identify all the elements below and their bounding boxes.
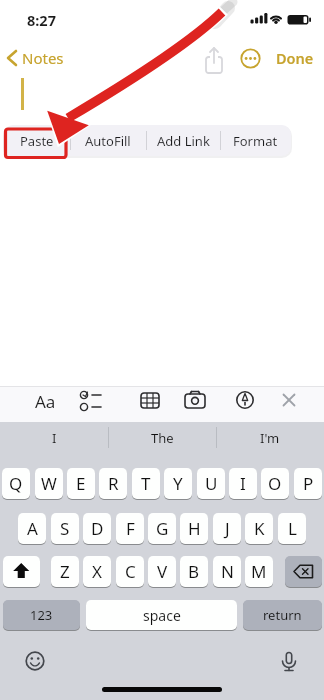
staticText: The (151, 429, 174, 447)
staticText: B (188, 560, 200, 583)
button[interactable]: S (51, 513, 79, 544)
button[interactable]: N (213, 556, 241, 587)
button[interactable]: AutoFill (70, 126, 146, 155)
button[interactable]: X (83, 556, 111, 587)
button[interactable]: 123 (3, 600, 80, 630)
staticText: 8:27 (27, 10, 56, 30)
button[interactable]: L (278, 513, 306, 544)
button[interactable]: Add Link (146, 126, 220, 155)
button[interactable]: I (229, 468, 257, 499)
staticText: I (240, 472, 246, 495)
button[interactable] (285, 556, 322, 587)
staticText: S (60, 517, 70, 540)
button[interactable]: Format (220, 126, 291, 155)
staticText: return (263, 606, 302, 624)
staticText: W (41, 472, 57, 495)
staticText: P (303, 472, 314, 495)
staticText: O (268, 472, 282, 495)
staticText: I'm (260, 429, 280, 447)
button[interactable]: F (116, 513, 144, 544)
staticText: G (156, 517, 169, 540)
staticText: Format (233, 132, 278, 150)
button[interactable]: V (148, 556, 176, 587)
staticText: space (143, 606, 181, 625)
staticText: H (188, 517, 201, 540)
button[interactable]: G (148, 513, 176, 544)
button[interactable]: J (213, 513, 241, 544)
staticText: A (27, 517, 38, 540)
button[interactable]: Y (164, 468, 192, 499)
button[interactable]: Aa (31, 389, 59, 413)
button[interactable]: T (132, 468, 160, 499)
staticText: D (91, 517, 104, 540)
button[interactable]: O (261, 468, 289, 499)
button[interactable] (3, 556, 40, 587)
button[interactable]: B (180, 556, 208, 587)
button[interactable]: Paste (4, 126, 70, 155)
button[interactable]: P (294, 468, 322, 499)
button[interactable]: R (99, 468, 127, 499)
button[interactable]: D (83, 513, 111, 544)
button[interactable]: M (245, 556, 273, 587)
staticText: C (125, 560, 136, 583)
staticText: T (141, 472, 151, 495)
button[interactable]: Q (2, 468, 30, 499)
button[interactable]: The (108, 424, 216, 451)
staticText: X (92, 560, 102, 583)
button[interactable]: return (243, 600, 322, 630)
staticText: I (52, 429, 57, 447)
button[interactable]: K (245, 513, 273, 544)
staticText: Add Link (157, 132, 210, 150)
button[interactable]: space (86, 600, 237, 630)
staticText: J (225, 517, 230, 540)
staticText: Paste (20, 132, 54, 150)
staticText: Y (173, 472, 183, 495)
staticText: Notes (22, 48, 64, 68)
staticText: K (254, 517, 265, 540)
button[interactable] (240, 48, 261, 69)
staticText: E (76, 472, 86, 495)
button[interactable] (200, 44, 228, 74)
staticText: AutoFill (85, 132, 131, 150)
staticText: Done (276, 48, 314, 68)
staticText: L (288, 517, 297, 540)
button[interactable]: I'm (216, 424, 324, 451)
button[interactable]: U (197, 468, 225, 499)
staticText: F (126, 517, 135, 540)
staticText: Q (9, 472, 23, 495)
staticText: 123 (30, 606, 53, 624)
button[interactable]: I (0, 424, 108, 451)
button[interactable]: H (180, 513, 208, 544)
button[interactable] (276, 648, 302, 674)
button[interactable]: A (18, 513, 46, 544)
staticText: U (205, 472, 218, 495)
staticText: Aa (35, 390, 56, 413)
staticText: N (221, 560, 234, 583)
staticText: V (157, 560, 168, 583)
button[interactable]: E (67, 468, 95, 499)
button[interactable]: Done (274, 48, 316, 70)
button[interactable]: Z (51, 556, 79, 587)
staticText: M (251, 560, 267, 583)
button[interactable] (22, 648, 48, 674)
staticText: R (108, 472, 119, 495)
button[interactable]: Notes (2, 46, 68, 70)
staticText: Z (60, 560, 70, 583)
button[interactable]: C (116, 556, 144, 587)
button[interactable]: W (35, 468, 63, 499)
